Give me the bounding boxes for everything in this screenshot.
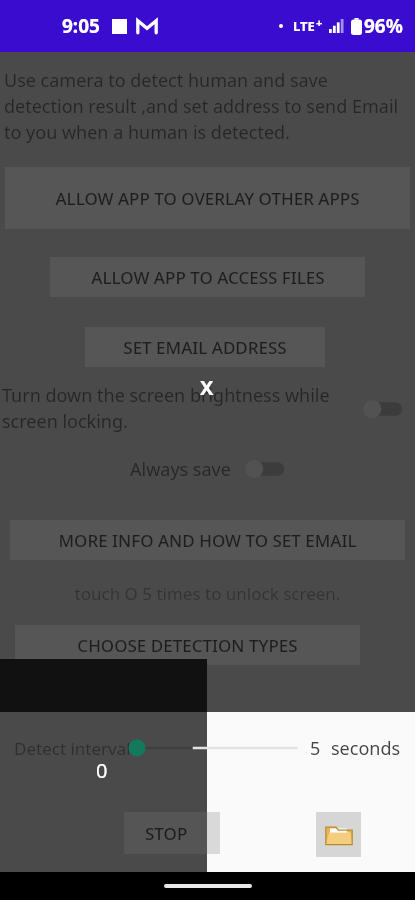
staticText: SET EMAIL ADDRESS [123,336,287,359]
staticText: ALLOW APP TO ACCESS FILES [91,266,325,289]
button[interactable]: CHOOSE DETECTION TYPES [15,625,360,665]
staticText: 9:05 [62,13,100,39]
staticText: LTE [293,17,315,35]
button[interactable]: MORE INFO AND HOW TO SET EMAIL [10,520,405,560]
staticText: X [200,374,214,401]
button[interactable] [124,812,220,854]
staticText: STOP [145,822,188,845]
button[interactable]: Toggle [359,396,403,422]
staticText: seconds [331,736,401,761]
button[interactable]: Toggle [241,456,285,482]
staticText: ALLOW APP TO OVERLAY OTHER APPS [55,187,360,210]
staticText: MORE INFO AND HOW TO SET EMAIL [58,529,357,552]
staticText: Always save [130,457,231,482]
staticText: Turn down the screen brightness while sc… [2,383,359,434]
button[interactable]: Open folder [316,812,361,857]
staticText: Use camera to detect human and save dete… [4,68,407,145]
button[interactable]: SET EMAIL ADDRESS [85,327,325,367]
staticText: touch O 5 times to unlock screen. [0,582,415,605]
staticText: Detect interval [14,737,131,760]
button[interactable]: ALLOW APP TO ACCESS FILES [50,257,365,297]
staticText: 0 [96,757,108,784]
staticText: + [316,15,323,30]
staticText: 5 [310,736,321,761]
staticText: CHOOSE DETECTION TYPES [77,634,298,657]
button[interactable]: ALLOW APP TO OVERLAY OTHER APPS [5,167,410,229]
staticText: 96% [364,13,403,39]
